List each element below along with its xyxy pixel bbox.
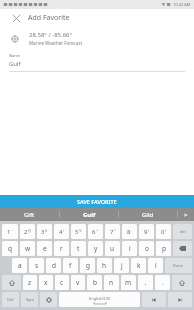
button[interactable]: q — [2, 241, 18, 256]
staticText: w — [25, 244, 31, 253]
button[interactable]: l — [148, 258, 163, 273]
staticText: 7 — [110, 228, 114, 236]
button[interactable]: z — [23, 275, 37, 290]
button[interactable]: Shift — [172, 275, 192, 290]
button[interactable]: x — [39, 275, 53, 290]
button[interactable]: Left — [142, 292, 166, 307]
staticText: Done — [173, 263, 184, 268]
staticText: 3 — [41, 228, 45, 236]
staticText: o — [145, 244, 149, 253]
button[interactable]: k — [131, 258, 146, 273]
button[interactable]: t — [71, 241, 86, 256]
button[interactable]: Keyboard settings — [40, 292, 57, 307]
staticText: - — [131, 228, 133, 233]
button[interactable]: g — [80, 258, 95, 273]
staticText: c — [60, 278, 64, 287]
button[interactable]: p — [156, 241, 171, 256]
button[interactable]: m — [121, 275, 136, 290]
button[interactable]: , — [138, 275, 153, 290]
staticText: ~ — [11, 228, 14, 233]
staticText: Add Favorite — [28, 13, 70, 23]
button[interactable]: 2 — [20, 224, 35, 239]
button[interactable]: w — [20, 241, 35, 256]
staticText: Gulf — [9, 60, 21, 68]
staticText: Gulf — [83, 211, 96, 219]
staticText: r — [60, 244, 63, 253]
button[interactable]: 6 — [88, 224, 103, 239]
staticText: Sym — [26, 297, 34, 302]
staticText: % — [79, 228, 82, 233]
staticText: l — [155, 261, 157, 270]
staticText: g — [86, 261, 90, 270]
button[interactable]: o — [139, 241, 154, 256]
button[interactable]: Done — [165, 258, 192, 273]
staticText: h — [102, 261, 107, 270]
staticText: 28.58° / -85.66° — [29, 31, 73, 39]
staticText: ^ — [96, 228, 99, 233]
button[interactable]: Gift — [0, 208, 59, 221]
button[interactable]: h — [97, 258, 112, 273]
staticText: v — [76, 278, 80, 287]
staticText: ( — [148, 228, 150, 233]
staticText: a — [18, 261, 22, 270]
staticText: , — [145, 279, 147, 287]
button[interactable]: SAVE FAVORITE — [0, 195, 194, 208]
button[interactable]: j — [114, 258, 129, 273]
button[interactable]: Ctrl — [2, 292, 19, 307]
button[interactable]: Shift — [2, 275, 21, 290]
staticText: p — [162, 244, 166, 253]
button[interactable]: Gild — [119, 208, 177, 221]
button[interactable]: 4 — [54, 224, 69, 239]
button[interactable]: Close — [9, 11, 23, 25]
staticText: English(US) — [89, 296, 111, 301]
button[interactable]: Space — [59, 292, 140, 307]
button[interactable]: More suggestions — [178, 208, 194, 221]
button[interactable]: c — [55, 275, 69, 290]
button[interactable]: i — [122, 241, 137, 256]
button[interactable]: y — [88, 241, 103, 256]
staticText: 9 — [144, 228, 148, 236]
button[interactable]: Sym — [21, 292, 38, 307]
staticText: f — [69, 261, 72, 270]
button[interactable]: 28.58° / -85.66° — [0, 27, 194, 49]
staticText: q — [8, 244, 12, 253]
staticText: > — [184, 211, 188, 219]
staticText: m — [125, 278, 132, 287]
staticText: k — [137, 261, 141, 270]
button[interactable]: s — [29, 258, 44, 273]
button[interactable]: 7 — [105, 224, 120, 239]
button[interactable]: v — [71, 275, 85, 290]
button[interactable]: 3 — [37, 224, 52, 239]
staticText: 8 — [127, 228, 131, 236]
staticText: d — [52, 261, 56, 270]
staticText: SAVE FAVORITE — [77, 198, 117, 205]
button[interactable]: d — [46, 258, 61, 273]
button[interactable]: u — [105, 241, 120, 256]
button[interactable]: Backspace — [173, 241, 192, 256]
staticText: y — [94, 244, 98, 253]
button[interactable]: 5 — [71, 224, 86, 239]
button[interactable]: . — [155, 275, 170, 290]
button[interactable]: n — [104, 275, 119, 290]
staticText: t — [77, 244, 80, 253]
staticText: . — [162, 279, 164, 287]
button[interactable]: e — [37, 241, 52, 256]
button[interactable]: 9 — [139, 224, 154, 239]
button[interactable]: 1 — [2, 224, 18, 239]
staticText: u — [110, 244, 115, 253]
button[interactable]: Delete — [173, 224, 192, 239]
button[interactable]: a — [12, 258, 27, 273]
button[interactable]: b — [87, 275, 102, 290]
button[interactable]: Gulf — [60, 208, 118, 221]
staticText: * — [114, 228, 116, 233]
button[interactable]: r — [54, 241, 69, 256]
staticText: Ctrl — [7, 297, 14, 302]
button[interactable]: 0 — [156, 224, 171, 239]
staticText: 1 — [7, 228, 11, 236]
button[interactable]: f — [63, 258, 78, 273]
staticText: 5 — [75, 228, 79, 236]
staticText: / — [63, 228, 65, 233]
button[interactable]: Right — [168, 292, 192, 307]
staticText: 2 — [24, 228, 28, 236]
button[interactable]: 8 — [122, 224, 137, 239]
